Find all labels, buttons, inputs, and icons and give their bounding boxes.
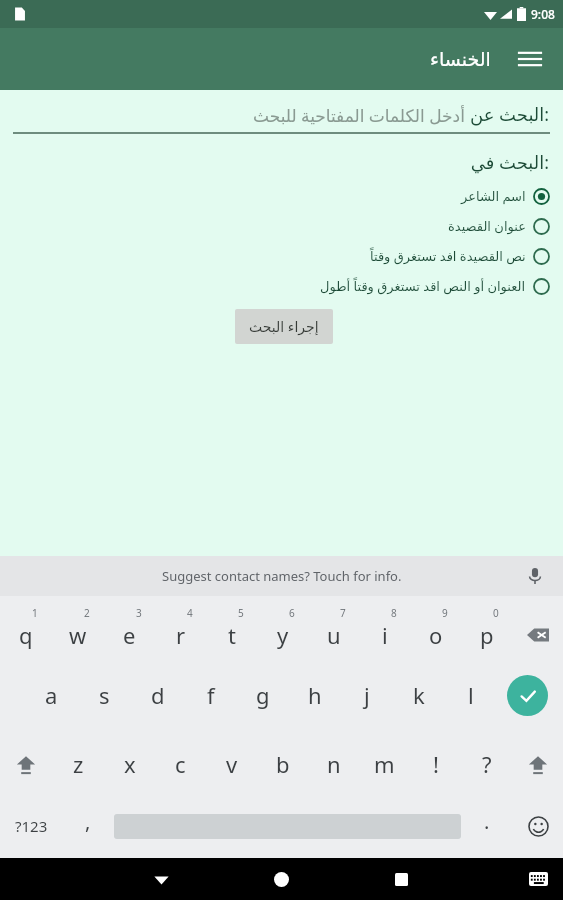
button[interactable]: l [445, 660, 497, 730]
staticText: h [308, 680, 322, 710]
staticText: l [468, 680, 474, 710]
staticText: نص القصيدة افد تستغرق وقتاً [370, 247, 526, 265]
staticText: , [85, 808, 91, 835]
staticText: f [207, 680, 215, 710]
button[interactable]: اسم الشاعر [0, 181, 563, 211]
button[interactable]: . [461, 798, 513, 854]
button[interactable]: z [52, 730, 104, 798]
staticText: 7 [340, 606, 346, 620]
button[interactable]: 4 [155, 602, 206, 660]
button[interactable]: إجراء البحث [235, 309, 333, 344]
staticText: أدخل الكلمات المفتاحية للبحث [253, 104, 465, 127]
button[interactable]: 2 [52, 602, 104, 660]
button[interactable]: أدخل الكلمات المفتاحية للبحث [13, 102, 550, 127]
staticText: 5 [238, 606, 244, 620]
staticText: ?123 [15, 816, 48, 836]
staticText: e [123, 620, 136, 650]
staticText: 1 [32, 606, 38, 620]
staticText: 4 [187, 606, 193, 620]
button[interactable]: 6 [257, 602, 308, 660]
staticText: الخنساء [430, 48, 491, 70]
staticText: x [124, 749, 136, 779]
button[interactable]: 0 [461, 602, 512, 660]
button[interactable]: a [25, 660, 78, 730]
button[interactable]: 7 [308, 602, 359, 660]
staticText: a [45, 680, 58, 710]
button[interactable]: Hide keyboard [521, 862, 555, 896]
staticText: إجراء البحث [249, 317, 319, 336]
staticText: ? [482, 749, 492, 779]
button[interactable]: v [206, 730, 257, 798]
staticText: v [226, 749, 238, 779]
staticText: ! [433, 749, 439, 779]
staticText: 6 [289, 606, 295, 620]
staticText: q [19, 620, 33, 650]
staticText: البحث في: [0, 150, 549, 175]
staticText: c [175, 749, 186, 779]
button[interactable]: ? [461, 730, 512, 798]
staticText: u [327, 620, 341, 650]
button[interactable]: ! [410, 730, 461, 798]
button[interactable]: 5 [206, 602, 257, 660]
staticText: 8 [391, 606, 397, 620]
staticText: 3 [136, 606, 142, 620]
staticText: w [69, 620, 87, 650]
button[interactable]: 8 [359, 602, 410, 660]
staticText: g [256, 680, 270, 710]
button[interactable]: Voice input [521, 562, 549, 590]
button[interactable]: f [184, 660, 237, 730]
button[interactable]: j [341, 660, 393, 730]
staticText: p [480, 620, 494, 650]
button[interactable]: العنوان أو النص اقد تستغرق وقتاً أطول [0, 271, 563, 301]
staticText: j [364, 680, 370, 710]
button[interactable]: h [289, 660, 341, 730]
staticText: 9 [442, 606, 448, 620]
button[interactable]: Backspace [512, 602, 563, 660]
staticText: t [228, 620, 236, 650]
button[interactable]: 1 [0, 602, 52, 660]
button[interactable]: Enter [497, 660, 557, 730]
button[interactable]: s [78, 660, 131, 730]
staticText: البحث عن: [470, 102, 550, 127]
staticText: . [484, 808, 490, 835]
button[interactable]: نص القصيدة افد تستغرق وقتاً [0, 241, 563, 271]
button[interactable]: Emoji [513, 798, 563, 854]
button[interactable]: 9 [410, 602, 461, 660]
staticText: d [151, 680, 165, 710]
staticText: i [382, 620, 388, 650]
staticText: n [327, 749, 341, 779]
button[interactable]: Recents [381, 859, 421, 899]
staticText: Suggest contact names? Touch for info. [162, 567, 402, 585]
staticText: r [176, 620, 186, 650]
button[interactable]: m [359, 730, 410, 798]
button[interactable]: Back [141, 859, 181, 899]
staticText: b [276, 749, 290, 779]
staticText: z [73, 749, 84, 779]
button[interactable]: d [131, 660, 184, 730]
staticText: عنوان القصيدة [448, 217, 526, 235]
staticText: 0 [493, 606, 499, 620]
button[interactable]: Shift [0, 730, 52, 798]
staticText: 2 [84, 606, 90, 620]
staticText: اسم الشاعر [461, 187, 526, 205]
button[interactable]: x [104, 730, 155, 798]
button[interactable]: Home [261, 859, 301, 899]
button[interactable]: Menu [511, 40, 549, 78]
button[interactable]: b [257, 730, 308, 798]
staticText: y [277, 620, 289, 650]
button[interactable]: 3 [104, 602, 155, 660]
button[interactable]: g [237, 660, 289, 730]
staticText: العنوان أو النص اقد تستغرق وقتاً أطول [320, 277, 526, 295]
button[interactable]: , [62, 798, 114, 854]
staticText: m [374, 749, 395, 779]
button[interactable]: Shift [512, 730, 563, 798]
staticText: o [429, 620, 443, 650]
button[interactable]: عنوان القصيدة [0, 211, 563, 241]
button[interactable]: k [393, 660, 445, 730]
staticText: k [413, 680, 425, 710]
button[interactable]: ?123 [0, 798, 62, 854]
button[interactable]: n [308, 730, 359, 798]
button[interactable] [114, 798, 461, 854]
button[interactable]: c [155, 730, 206, 798]
staticText: 9:08 [531, 6, 555, 22]
